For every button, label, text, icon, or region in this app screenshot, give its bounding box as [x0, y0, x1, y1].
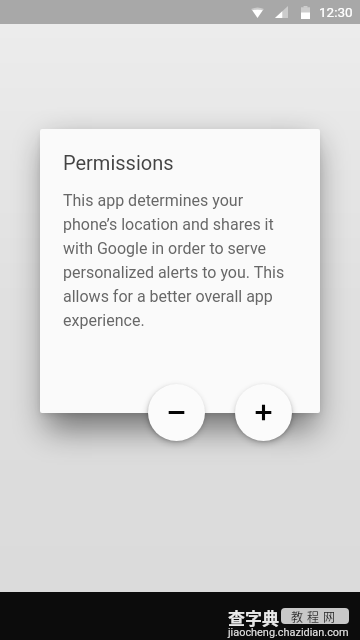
staticText: 教程网 [291, 608, 340, 624]
staticText: Permissions [63, 151, 174, 174]
staticText: jiaocheng.chazidian.com [228, 626, 349, 639]
staticText: This app determines your phone’s locatio… [63, 191, 296, 330]
button[interactable]: Increase [235, 384, 292, 441]
staticText: 查字典 [228, 605, 279, 630]
button[interactable]: Permissions [40, 129, 320, 413]
button[interactable]: Decrease [148, 384, 205, 441]
staticText: 12:30 [319, 4, 353, 20]
